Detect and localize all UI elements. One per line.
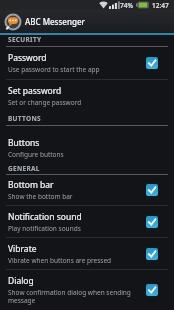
button[interactable]: Set password xyxy=(0,80,174,112)
staticText: Configure buttons xyxy=(8,150,64,159)
staticText: Bottom bar xyxy=(8,179,54,191)
staticText: Password xyxy=(8,52,47,64)
staticText: ABC Messenger xyxy=(25,16,85,27)
staticText: Notification sound xyxy=(8,211,82,223)
staticText: Show the bottom bar xyxy=(8,192,73,201)
button[interactable] xyxy=(146,57,158,69)
staticText: Buttons xyxy=(8,137,40,149)
staticText: GENERAL xyxy=(8,164,40,172)
staticText: Dialog xyxy=(8,275,34,287)
button[interactable] xyxy=(146,248,158,260)
staticText: Set password xyxy=(8,85,62,97)
button[interactable] xyxy=(146,216,158,228)
button[interactable]: Bottom bar xyxy=(0,175,174,205)
staticText: Vibrate xyxy=(8,243,37,255)
button[interactable]: ABC Messenger xyxy=(0,10,174,33)
staticText: Vibrate when buttons are pressed xyxy=(8,256,112,265)
staticText: Show confirmation dialog when sending me… xyxy=(8,288,131,305)
button[interactable] xyxy=(146,184,158,196)
staticText: Play notification sounds xyxy=(8,224,81,233)
button[interactable] xyxy=(146,284,158,296)
staticText: Set or change password xyxy=(8,98,82,107)
staticText: BUTTONS xyxy=(8,114,41,123)
staticText: Use password to start the app xyxy=(8,65,100,74)
staticText: 74% xyxy=(120,1,133,10)
button[interactable]: Buttons xyxy=(0,126,174,164)
staticText: SECURITY xyxy=(8,35,42,44)
button[interactable]: Notification sound xyxy=(0,206,174,237)
staticText: 12:47 xyxy=(152,1,169,10)
button[interactable]: Dialog xyxy=(0,270,174,310)
button[interactable]: Password xyxy=(0,47,174,79)
button[interactable]: Vibrate xyxy=(0,238,174,269)
